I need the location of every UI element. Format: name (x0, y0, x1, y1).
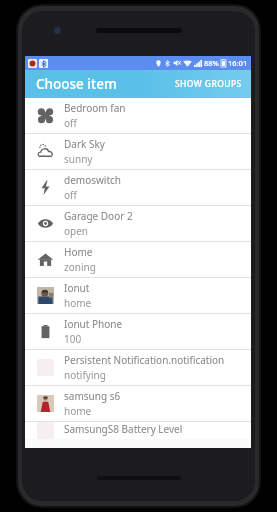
staticText: zoning (64, 260, 96, 274)
staticText: samsung s6 (64, 389, 121, 403)
button[interactable]: Choose item (36, 75, 117, 93)
staticText: notifying (64, 368, 106, 382)
staticText: SamsungS8 Battery Level (64, 422, 183, 436)
button[interactable]: Persistent Notification.notification (25, 350, 251, 385)
staticText: open (64, 224, 89, 238)
staticText: Choose item (36, 75, 117, 93)
staticText: Ionut Phone (64, 317, 123, 331)
staticText: Bedroom fan (64, 101, 126, 115)
button[interactable]: Ionut Phone (25, 314, 251, 349)
button[interactable]: Dark Sky (25, 134, 251, 169)
button[interactable]: Ionut (25, 278, 251, 313)
staticText: off (64, 188, 77, 202)
button[interactable]: samsung s6 (25, 386, 251, 421)
staticText: Persistent Notification.notification (64, 353, 225, 367)
button[interactable]: SamsungS8 Battery Level (25, 422, 251, 439)
staticText: off (64, 116, 77, 130)
staticText: Dark Sky (64, 137, 105, 151)
button[interactable]: Garage Door 2 (25, 206, 251, 241)
button[interactable]: Bedroom fan (25, 98, 251, 133)
staticText: home (64, 404, 92, 418)
staticText: sunny (64, 152, 93, 166)
button[interactable]: demoswitch (25, 170, 251, 205)
staticText: 88% (204, 58, 219, 68)
staticText: demoswitch (64, 173, 122, 187)
staticText: Ionut (64, 281, 90, 295)
staticText: Home (64, 245, 93, 259)
staticText: 100 (64, 332, 82, 346)
staticText: home (64, 296, 92, 310)
staticText: Garage Door 2 (64, 209, 133, 223)
staticText: 16:01 (228, 58, 248, 68)
button[interactable]: Home (25, 242, 251, 277)
staticText: SHOW GROUPS (175, 78, 242, 90)
button[interactable]: SHOW GROUPS (166, 72, 251, 96)
